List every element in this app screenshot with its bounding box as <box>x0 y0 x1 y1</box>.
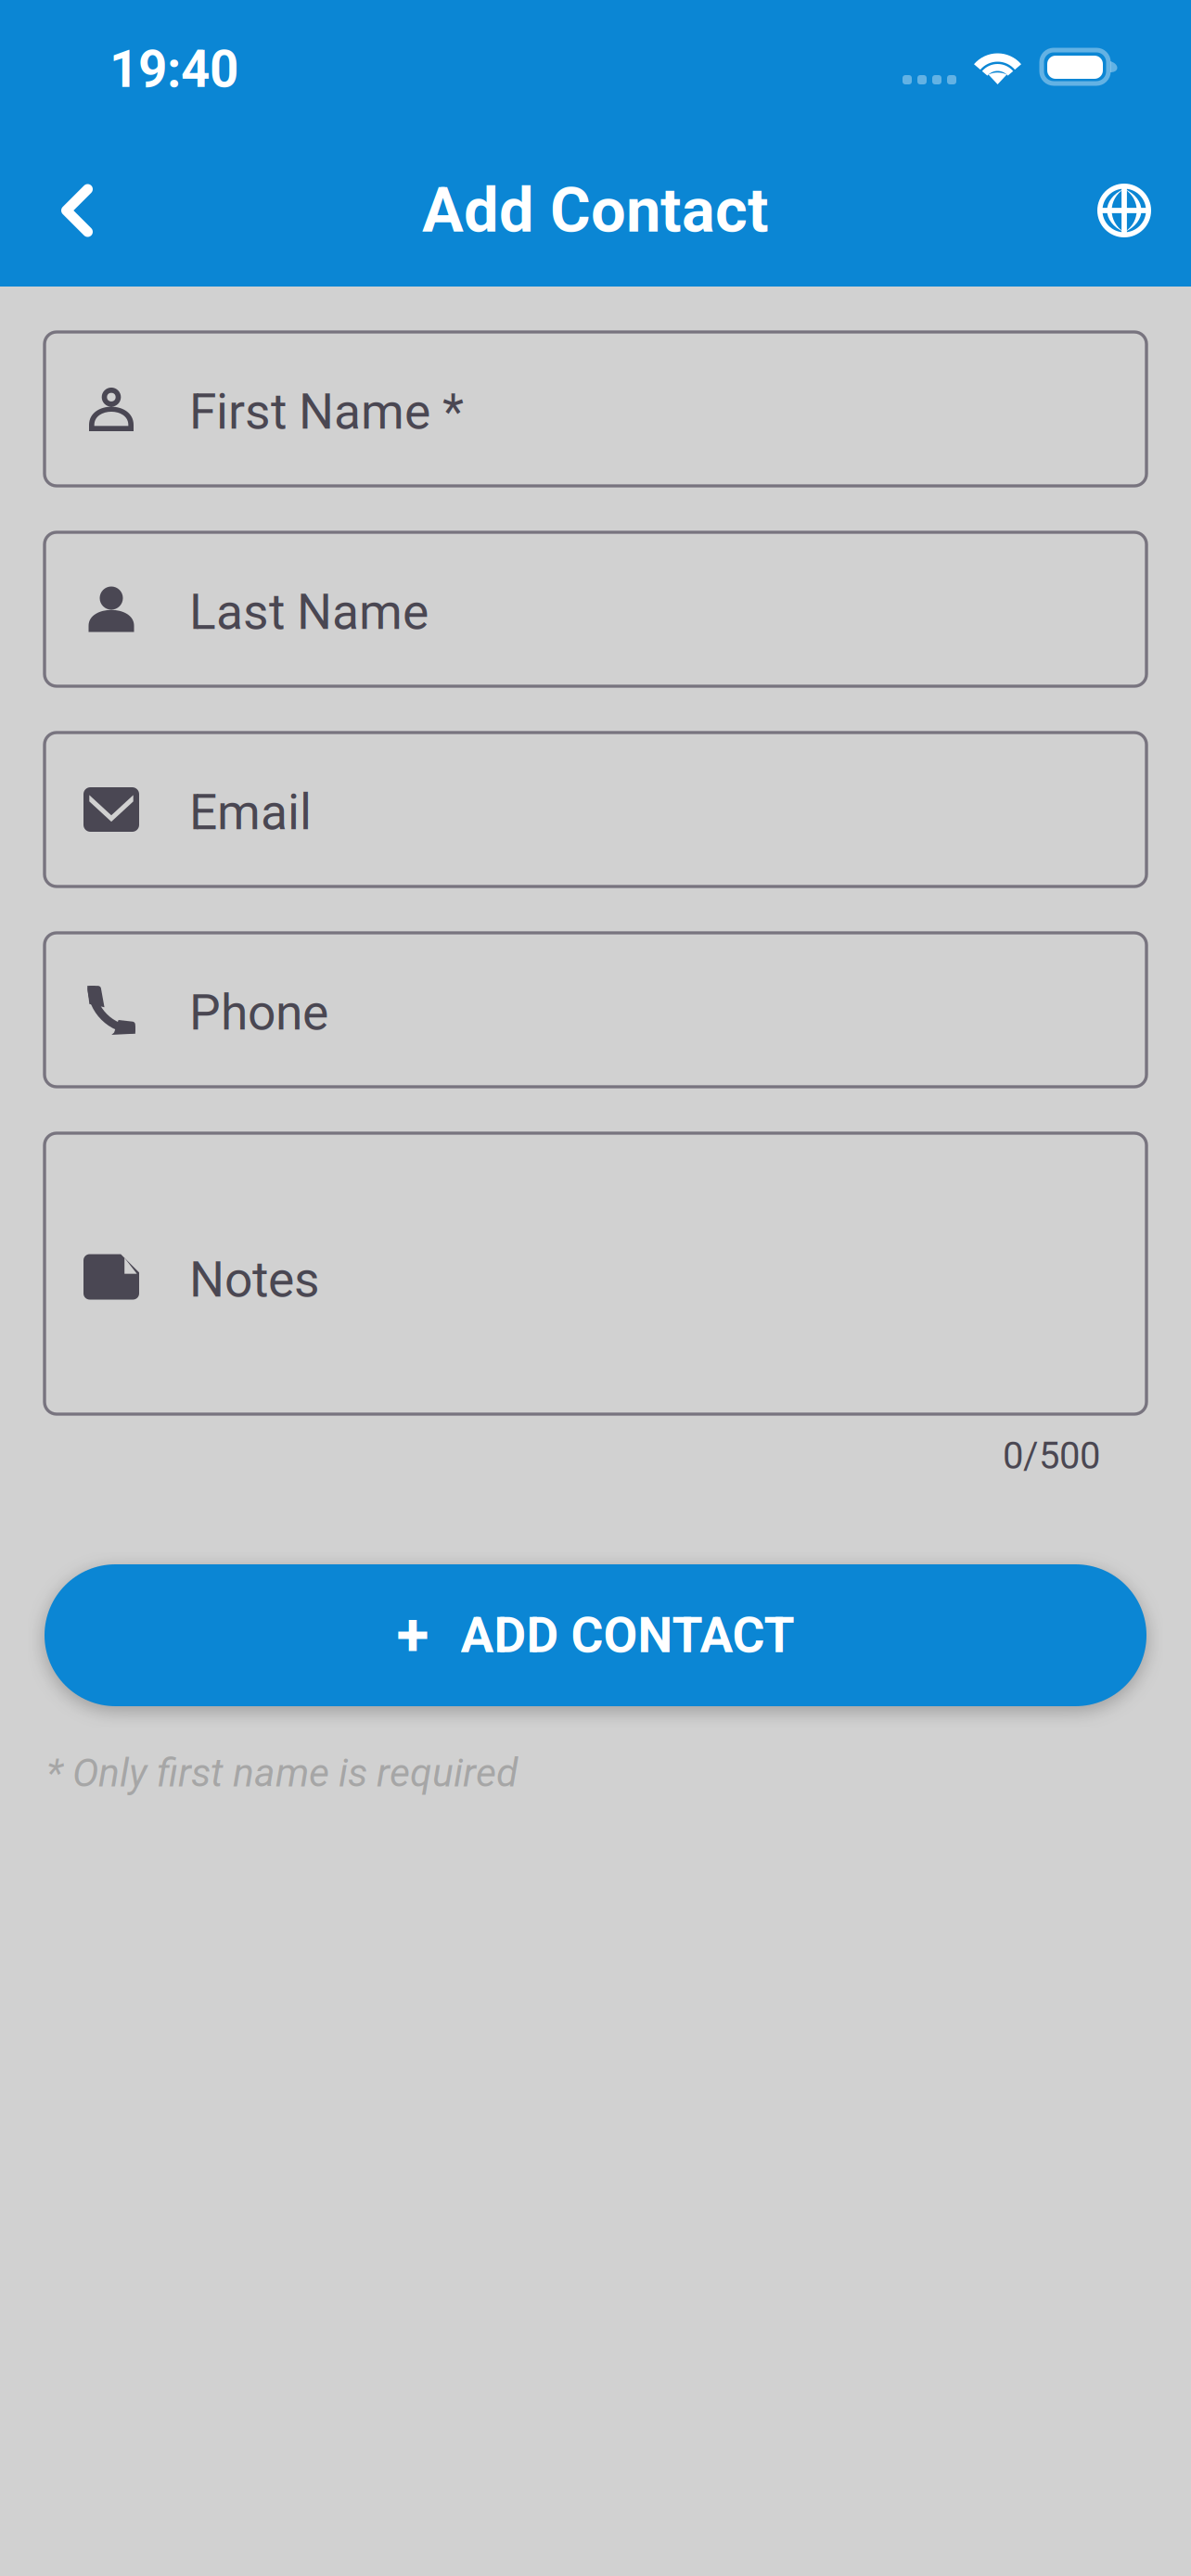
staticText: Phone <box>189 984 328 1042</box>
staticText: 0/500 <box>1003 1434 1100 1478</box>
button[interactable]: Notes <box>45 1133 1146 1414</box>
button[interactable]: Change language <box>1072 159 1176 262</box>
button[interactable]: Phone <box>45 933 1146 1087</box>
button[interactable]: Back <box>25 159 129 262</box>
staticText: Notes <box>189 1251 320 1309</box>
staticText: 19:40 <box>109 40 238 99</box>
staticText: Email <box>189 783 312 841</box>
staticText: ADD CONTACT <box>461 1606 794 1664</box>
button[interactable]: Email <box>45 733 1146 886</box>
staticText: * Only first name is required <box>46 1750 518 1796</box>
staticText: Add Contact <box>422 174 769 247</box>
button[interactable]: First Name * <box>45 332 1146 486</box>
staticText: + <box>397 1600 429 1670</box>
button[interactable]: + <box>45 1564 1146 1706</box>
staticText: First Name * <box>189 383 464 441</box>
staticText: Last Name <box>189 583 429 641</box>
button[interactable]: Last Name <box>45 532 1146 686</box>
